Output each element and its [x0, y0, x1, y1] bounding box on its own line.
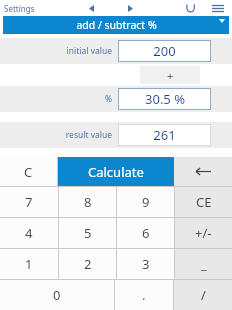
staticText: CE [196, 193, 212, 211]
button[interactable]: 6 [117, 218, 174, 248]
staticText: . [142, 286, 146, 304]
staticText: C [24, 163, 33, 181]
staticText: / [201, 286, 206, 304]
staticText: 8 [84, 193, 92, 211]
staticText: % [18, 93, 112, 105]
button[interactable]: + [140, 66, 200, 84]
button[interactable]: / [174, 280, 232, 310]
staticText: 5 [84, 224, 92, 242]
button[interactable]: 3 [117, 249, 174, 279]
staticText: 4 [25, 224, 33, 242]
staticText: 3 [142, 255, 150, 273]
button[interactable]: +/- [175, 218, 232, 248]
staticText: 7 [25, 193, 33, 211]
button[interactable]: Undo [181, 0, 199, 16]
staticText: 0 [53, 286, 61, 304]
button[interactable]: Previous [82, 0, 100, 16]
staticText: + [167, 68, 174, 83]
staticText: 9 [142, 193, 150, 211]
button[interactable]: 261 [118, 124, 211, 146]
button[interactable]: More options [209, 0, 227, 16]
button[interactable]: 200 [118, 40, 211, 62]
staticText: 200 [153, 42, 176, 60]
button[interactable]: C [0, 157, 57, 186]
button[interactable]: 7 [0, 187, 58, 217]
staticText: Calculate [88, 163, 144, 181]
button[interactable]: 2 [59, 249, 116, 279]
staticText: _ [201, 255, 207, 273]
button[interactable]: . [115, 280, 173, 310]
staticText: 261 [153, 126, 176, 144]
button[interactable]: Next [121, 0, 139, 16]
staticText: +/- [195, 224, 212, 242]
button[interactable]: 9 [117, 187, 174, 217]
button[interactable]: Calculate [58, 157, 174, 186]
staticText: 1 [25, 255, 33, 273]
button[interactable]: 30.5 % [118, 88, 211, 110]
button[interactable]: 4 [0, 218, 58, 248]
button[interactable]: _ [175, 249, 232, 279]
button[interactable]: CE [175, 187, 232, 217]
staticText: 6 [142, 224, 150, 242]
button[interactable]: 1 [0, 249, 58, 279]
button[interactable]: Settings [4, 3, 35, 14]
staticText: 2 [84, 255, 92, 273]
button[interactable]: add / subtract % [3, 16, 229, 34]
staticText: result value [18, 129, 112, 141]
staticText: add / subtract % [76, 18, 157, 32]
button[interactable]: 0 [0, 280, 114, 310]
button[interactable]: 8 [59, 187, 116, 217]
staticText: 30.5 % [145, 90, 185, 108]
staticText: initial value [18, 45, 112, 57]
button[interactable]: Backspace [174, 157, 232, 186]
button[interactable]: 5 [59, 218, 116, 248]
